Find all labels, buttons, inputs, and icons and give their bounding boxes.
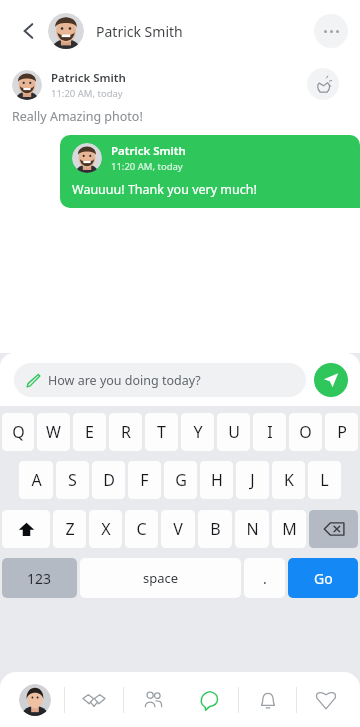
staticText: G — [175, 469, 187, 491]
button[interactable]: W — [37, 413, 70, 451]
button[interactable]: Chat — [188, 679, 232, 721]
button[interactable]: P — [325, 413, 358, 451]
button[interactable]: M — [272, 510, 306, 548]
button[interactable]: Q — [2, 413, 34, 451]
staticText: How are you doing today? — [48, 372, 201, 389]
button[interactable]: Send — [314, 363, 348, 397]
staticText: D — [103, 469, 115, 491]
staticText: B — [210, 518, 221, 540]
button[interactable]: F — [128, 461, 161, 499]
staticText: Y — [193, 421, 203, 443]
button[interactable]: Y — [181, 413, 214, 451]
staticText: N — [246, 518, 259, 540]
staticText: L — [320, 469, 329, 491]
button[interactable]: React with clap — [307, 68, 339, 100]
staticText: 11:20 AM, today — [51, 87, 123, 100]
staticText: Go — [314, 569, 333, 588]
staticText: C — [136, 518, 147, 540]
staticText: F — [140, 469, 149, 491]
staticText: X — [101, 518, 111, 540]
staticText: Really Amazing photo! — [12, 108, 143, 125]
button[interactable]: V — [161, 510, 195, 548]
staticText: Z — [65, 518, 75, 540]
staticText: O — [299, 421, 312, 443]
staticText: S — [68, 469, 77, 491]
button[interactable]: B — [198, 510, 232, 548]
button[interactable]: O — [289, 413, 322, 451]
button[interactable]: T — [145, 413, 178, 451]
button[interactable]: Favourites — [304, 679, 348, 721]
button[interactable]: C — [125, 510, 158, 548]
button[interactable]: Notifications — [246, 679, 290, 721]
staticText: Patrick Smith — [51, 70, 126, 86]
staticText: Q — [12, 421, 25, 443]
button[interactable]: space — [80, 558, 241, 598]
button[interactable]: 123 — [2, 558, 77, 598]
staticText: . — [263, 569, 267, 588]
button[interactable]: Go — [288, 558, 358, 598]
button[interactable]: Back — [12, 14, 46, 48]
button[interactable]: X — [89, 510, 122, 548]
button[interactable]: N — [235, 510, 269, 548]
staticText: T — [157, 421, 166, 443]
button[interactable]: J — [236, 461, 269, 499]
button[interactable]: G — [164, 461, 197, 499]
staticText: W — [46, 421, 61, 443]
staticText: K — [284, 469, 294, 491]
staticText: Wauuuu! Thank you very much! — [72, 181, 257, 198]
button[interactable]: More options — [314, 14, 348, 48]
button[interactable]: Connections — [72, 679, 116, 721]
staticText: space — [143, 569, 179, 587]
staticText: I — [267, 421, 273, 443]
button[interactable]: R — [109, 413, 142, 451]
button[interactable]: How are you doing today? — [14, 363, 306, 397]
staticText: R — [121, 421, 131, 443]
staticText: A — [31, 469, 42, 491]
staticText: V — [173, 518, 183, 540]
button[interactable]: E — [73, 413, 106, 451]
button[interactable]: K — [272, 461, 305, 499]
button[interactable]: Backspace — [309, 510, 358, 548]
staticText: P — [337, 421, 347, 443]
staticText: U — [228, 421, 240, 443]
button[interactable]: S — [56, 461, 89, 499]
button[interactable]: H — [200, 461, 233, 499]
staticText: Patrick Smith — [96, 22, 183, 41]
button[interactable]: Groups — [131, 679, 175, 721]
staticText: M — [282, 518, 297, 540]
staticText: J — [250, 469, 255, 491]
button[interactable]: Patrick Smith — [60, 135, 360, 208]
button[interactable]: . — [244, 558, 285, 598]
staticText: H — [211, 469, 223, 491]
staticText: Patrick Smith — [111, 143, 186, 159]
button[interactable]: Patrick Smith — [0, 62, 300, 135]
staticText: E — [85, 421, 94, 443]
button[interactable]: Z — [53, 510, 86, 548]
button[interactable] — [13, 679, 57, 721]
button[interactable]: Shift — [2, 510, 50, 548]
button[interactable]: U — [217, 413, 250, 451]
staticText: 11:20 AM, today — [111, 160, 183, 173]
staticText: 123 — [27, 569, 52, 588]
button[interactable]: I — [253, 413, 286, 451]
button[interactable]: A — [19, 461, 53, 499]
button[interactable]: D — [92, 461, 125, 499]
button[interactable]: L — [308, 461, 341, 499]
